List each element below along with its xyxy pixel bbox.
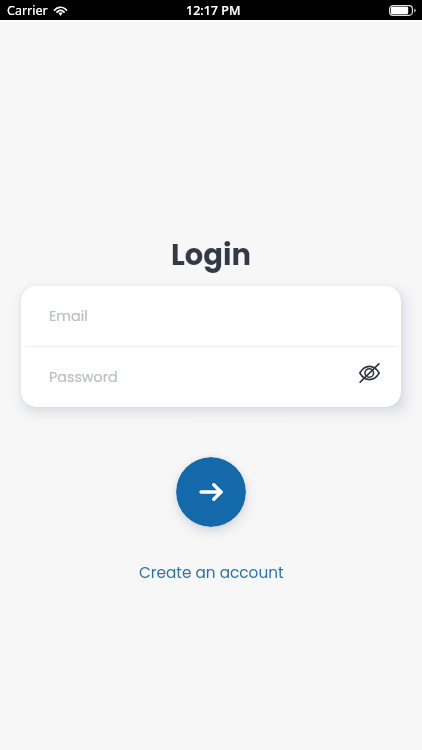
button[interactable]: Password [21,347,401,407]
staticText: Create an account [139,562,284,583]
button[interactable]: Show password [356,360,382,386]
staticText: Password [49,367,118,387]
staticText: Email [49,306,88,326]
button[interactable]: Email [21,286,401,346]
staticText: Login [171,235,252,276]
button[interactable]: Create an account [129,559,294,586]
button[interactable]: Sign in [176,457,246,527]
staticText: 12:17 PM [186,2,241,19]
staticText: Carrier [7,2,48,19]
